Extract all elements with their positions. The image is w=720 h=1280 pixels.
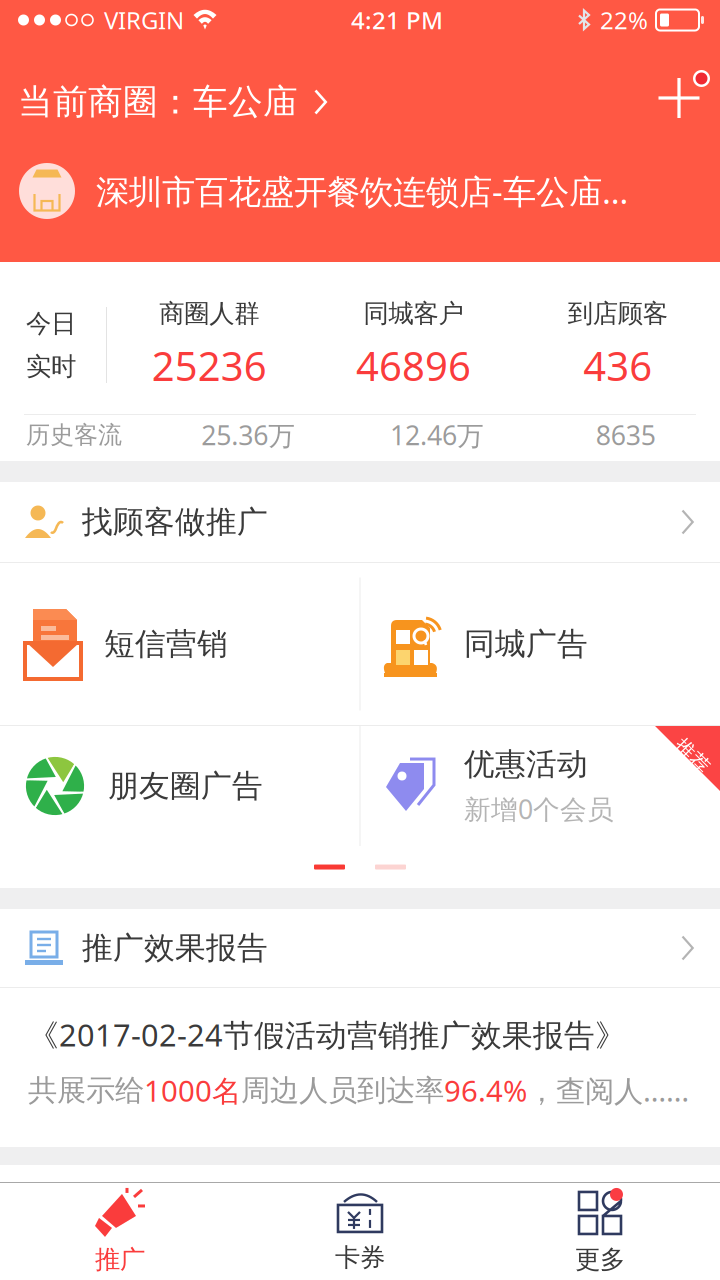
- button[interactable]: 《2017-02-24节假活动营销推广效果报告》: [0, 988, 720, 1136]
- staticText: 436: [583, 339, 652, 392]
- button[interactable]: 推广: [0, 1183, 240, 1279]
- staticText: 1000名: [144, 1071, 241, 1110]
- staticText: 今日: [26, 308, 76, 339]
- button[interactable]: 同城广告: [360, 563, 720, 725]
- staticText: 同城广告: [464, 625, 588, 663]
- staticText: 到店顾客: [568, 298, 668, 329]
- button[interactable]: 卡券: [240, 1183, 480, 1279]
- staticText: 同城客户: [363, 298, 463, 329]
- button[interactable]: 找顾客做推广: [0, 482, 720, 562]
- staticText: 46896: [356, 339, 471, 392]
- staticText: 推荐: [672, 744, 712, 768]
- button[interactable]: 优惠活动: [360, 726, 720, 846]
- staticText: 共展示给: [28, 1072, 144, 1108]
- staticText: 更多: [575, 1244, 625, 1275]
- staticText: 卡券: [335, 1242, 385, 1273]
- staticText: 朋友圈广告: [108, 767, 263, 805]
- button[interactable]: 推广效果报告: [0, 909, 720, 987]
- button[interactable]: 添加: [639, 40, 715, 128]
- button[interactable]: 当前商圈：车公庙: [0, 40, 720, 131]
- staticText: 推广: [95, 1244, 145, 1275]
- staticText: 25236: [152, 339, 267, 392]
- staticText: 22%: [600, 4, 648, 36]
- staticText: 短信营销: [104, 625, 228, 663]
- staticText: 商圈人群: [159, 298, 259, 329]
- staticText: 推广效果报告: [82, 929, 268, 967]
- staticText: 96.4%: [444, 1071, 527, 1110]
- staticText: VIRGIN: [104, 4, 184, 36]
- button[interactable]: 更多: [480, 1183, 720, 1279]
- staticText: 当前商圈：车公庙: [18, 81, 298, 123]
- button[interactable]: 短信营销: [0, 563, 360, 725]
- staticText: 《2017-02-24节假活动营销推广效果报告》: [28, 1014, 626, 1055]
- staticText: 优惠活动: [464, 745, 588, 783]
- staticText: 新增0个会员: [464, 791, 614, 826]
- staticText: 12.46万: [390, 417, 484, 453]
- staticText: 8635: [596, 417, 656, 453]
- staticText: 4:21 PM: [351, 4, 443, 36]
- staticText: 25.36万: [201, 417, 295, 453]
- button[interactable]: 朋友圈广告: [0, 726, 360, 846]
- staticText: 历史客流: [26, 420, 122, 450]
- staticText: 实时: [26, 351, 76, 382]
- button[interactable]: 深圳市百花盛开餐饮连锁店-车公庙…: [0, 145, 720, 237]
- staticText: 深圳市百花盛开餐饮连锁店-车公庙…: [96, 169, 628, 213]
- staticText: 周边人员到达率: [241, 1072, 444, 1108]
- staticText: 找顾客做推广: [82, 503, 268, 541]
- staticText: ，查阅人……: [527, 1071, 689, 1110]
